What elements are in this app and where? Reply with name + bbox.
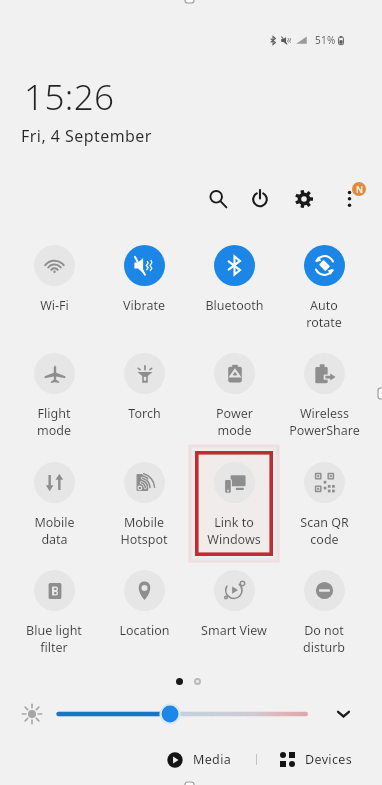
button[interactable]: Do not disturb (279, 570, 369, 655)
staticText: 15:26 (24, 73, 115, 121)
button[interactable]: Flight mode (9, 353, 99, 438)
button[interactable]: Power mode (189, 353, 279, 438)
staticText: 51% (315, 33, 336, 47)
button[interactable]: Vibrate (99, 245, 189, 314)
staticText: Torch (128, 405, 161, 422)
button[interactable]: Smart View (189, 570, 279, 639)
staticText: Mobile data (34, 514, 75, 547)
staticText: Devices (305, 751, 352, 768)
button[interactable]: Power (243, 182, 277, 216)
staticText: Bluetooth (205, 297, 264, 314)
button[interactable]: Media (167, 751, 236, 768)
staticText: Blue light filter (26, 622, 82, 655)
button[interactable]: Link to Windows (189, 462, 279, 547)
button[interactable]: Scan QR code (279, 462, 369, 547)
button[interactable]: Wireless PowerShare (279, 353, 369, 438)
button[interactable]: Mobile data (9, 462, 99, 547)
staticText: Power mode (216, 405, 253, 438)
button[interactable]: Auto rotate (279, 245, 369, 330)
staticText: Scan QR code (300, 514, 349, 547)
staticText: Fri, 4 September (21, 125, 152, 147)
button[interactable]: Search (201, 182, 235, 216)
button[interactable]: Wi-Fi (9, 245, 99, 314)
staticText: Flight mode (37, 405, 71, 438)
staticText: N (356, 183, 363, 195)
staticText: Smart View (201, 622, 267, 639)
staticText: Link to Windows (207, 514, 261, 547)
staticText: Do not disturb (303, 622, 345, 655)
staticText: Wi-Fi (40, 297, 69, 314)
button[interactable]: Expand (331, 702, 355, 726)
staticText: Media (193, 751, 232, 768)
button[interactable]: Location (99, 570, 189, 639)
button[interactable]: Torch (99, 353, 189, 422)
staticText: Wireless PowerShare (289, 405, 360, 438)
button[interactable]: More options (332, 182, 367, 217)
button[interactable]: Mobile Hotspot (99, 462, 189, 547)
button[interactable]: Blue light filter (9, 570, 99, 655)
button[interactable]: Bluetooth (189, 245, 279, 314)
button[interactable]: Settings (287, 182, 321, 216)
staticText: Auto rotate (306, 297, 342, 330)
staticText: Vibrate (123, 297, 165, 314)
staticText: Location (119, 622, 170, 639)
button[interactable]: Devices (280, 751, 356, 768)
staticText: Mobile Hotspot (120, 514, 168, 547)
